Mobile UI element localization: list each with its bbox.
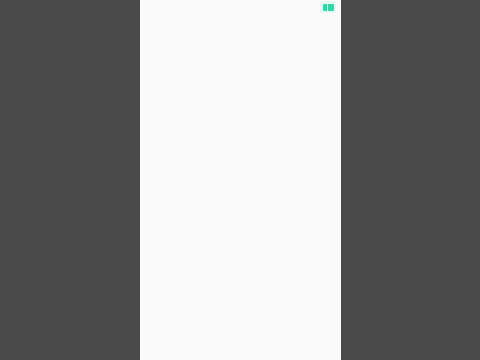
button[interactable]: Connection status — [320, 1, 336, 13]
